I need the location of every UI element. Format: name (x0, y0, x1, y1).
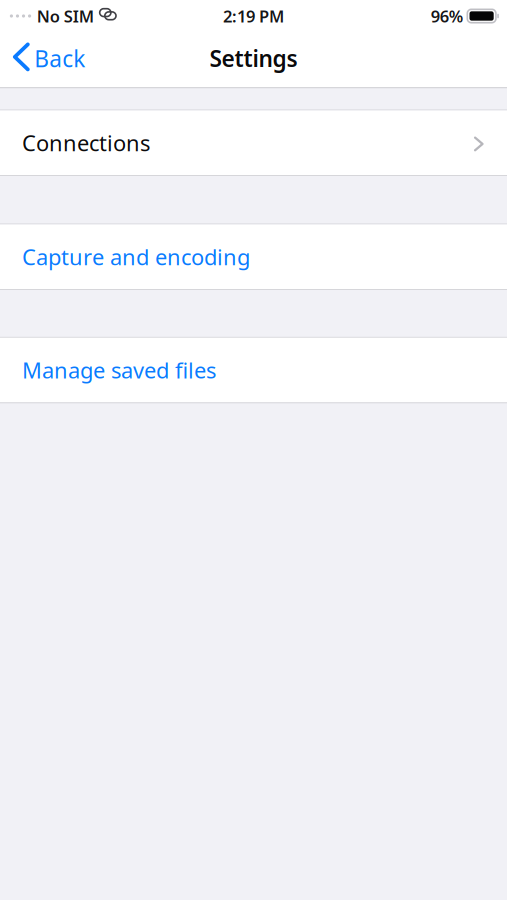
staticText: 96% (431, 5, 463, 27)
staticText: No SIM (37, 5, 94, 27)
button[interactable]: Back (0, 32, 95, 87)
staticText: Manage saved files (22, 355, 216, 385)
staticText: Back (34, 43, 85, 74)
staticText: Settings (209, 43, 297, 74)
button[interactable]: Capture and encoding (0, 224, 507, 289)
staticText: Capture and encoding (22, 242, 250, 272)
staticText: 2:19 PM (223, 5, 284, 27)
button[interactable]: Manage saved files (0, 338, 507, 402)
staticText: Connections (22, 128, 150, 158)
button[interactable]: Connections (0, 110, 507, 175)
